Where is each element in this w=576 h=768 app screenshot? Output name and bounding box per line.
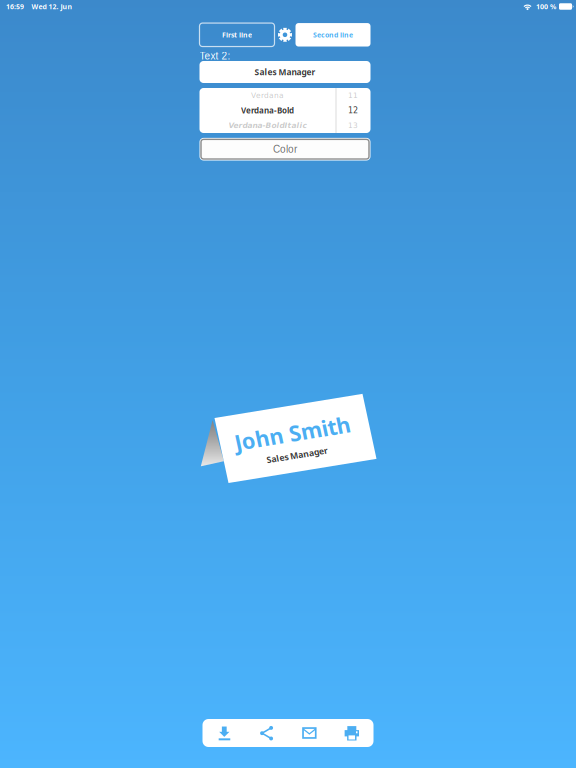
staticText: Second line [313, 30, 353, 39]
button[interactable]: Print [331, 719, 374, 747]
staticText: John Smith [229, 430, 346, 460]
staticText: First line [222, 30, 252, 39]
button[interactable]: Share [245, 719, 288, 747]
staticText: Sales Manager [254, 66, 315, 78]
button[interactable]: First line [199, 23, 274, 46]
button[interactable]: Sales Manager [199, 61, 370, 83]
staticText: 100 % [536, 2, 556, 11]
staticText: 11 [348, 91, 358, 100]
staticText: Color [273, 144, 297, 155]
staticText: 16:59 [6, 2, 24, 11]
button[interactable]: Settings [274, 23, 295, 46]
button[interactable]: Second line [295, 23, 370, 46]
staticText: Verdana [251, 91, 284, 100]
staticText: 13 [348, 121, 358, 130]
button[interactable]: Color [199, 138, 370, 160]
staticText: Verdana-Bold [241, 105, 294, 116]
staticText: Wed 12. Jun [31, 2, 72, 11]
button[interactable]: Save [202, 719, 245, 747]
staticText: Verdana-BoldItalic [228, 121, 306, 130]
staticText: 12 [348, 106, 358, 115]
staticText: Sales Manager [256, 462, 318, 473]
staticText: Text 2: [199, 50, 230, 62]
button[interactable]: Email [288, 719, 331, 747]
